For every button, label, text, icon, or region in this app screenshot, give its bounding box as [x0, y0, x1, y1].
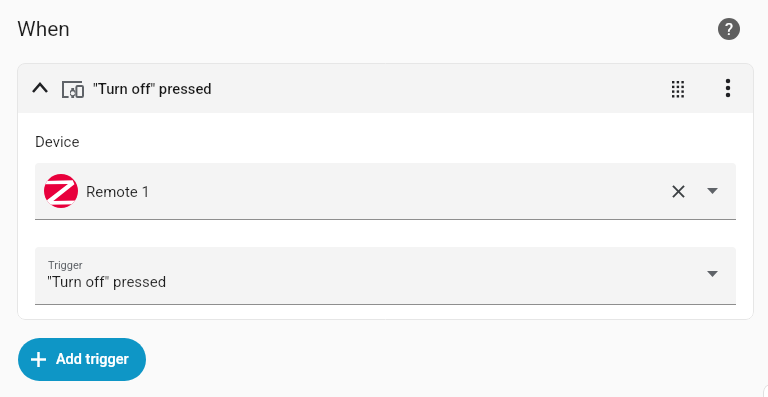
staticText: "Turn off" pressed [47, 273, 167, 291]
button[interactable]: More options [708, 68, 748, 108]
button[interactable]: Reorder [658, 69, 698, 109]
button[interactable]: Show device options [697, 176, 727, 206]
button[interactable]: Trigger [35, 247, 736, 305]
staticText: Remote 1 [86, 183, 150, 201]
staticText: "Turn off" pressed [93, 80, 212, 97]
staticText: Trigger [48, 259, 83, 272]
button[interactable]: Clear device [660, 173, 696, 209]
button[interactable]: Add trigger [18, 338, 146, 381]
staticText: ? [725, 19, 734, 39]
button[interactable]: Show trigger options [697, 259, 727, 289]
staticText: When [17, 17, 70, 42]
button[interactable]: Remote 1 [35, 163, 736, 220]
button[interactable]: Help [696, 6, 740, 50]
staticText: Add trigger [56, 351, 129, 368]
staticText: Device [35, 133, 80, 151]
button[interactable]: Collapse [23, 71, 57, 105]
button[interactable]: Collapse [17, 63, 754, 113]
